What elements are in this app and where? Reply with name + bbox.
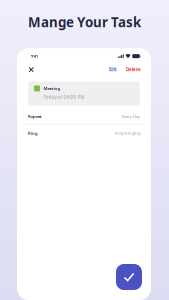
staticText: Delete <box>126 67 141 72</box>
staticText: Every Day <box>122 114 140 119</box>
staticText: Keep Ringing <box>115 130 140 136</box>
button[interactable]: Delete <box>124 64 143 75</box>
button[interactable]: Edit <box>107 64 119 75</box>
button[interactable]: Ring <box>17 125 151 141</box>
staticText: Repeat <box>28 113 42 119</box>
button[interactable]: Close <box>26 64 36 75</box>
staticText: 9:41 <box>31 54 38 59</box>
staticText: Mange Your Task <box>28 13 141 31</box>
button[interactable]: Save <box>116 264 142 290</box>
staticText: Edit <box>109 67 117 72</box>
staticText: Meeting <box>43 85 60 91</box>
staticText: Ring <box>28 130 38 136</box>
staticText: Today at 04:00 PM <box>43 94 84 100</box>
button[interactable]: Repeat <box>17 108 151 124</box>
